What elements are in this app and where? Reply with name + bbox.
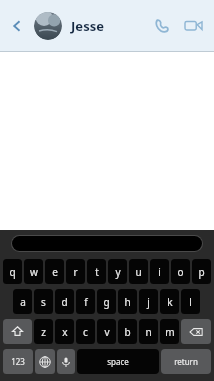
staticText: u bbox=[135, 265, 142, 279]
button[interactable]: Backspace bbox=[181, 319, 211, 344]
staticText: h bbox=[124, 295, 131, 309]
staticText: s bbox=[41, 295, 46, 309]
button[interactable]: a bbox=[13, 289, 32, 314]
staticText: space bbox=[107, 356, 129, 367]
staticText: x bbox=[62, 325, 68, 339]
staticText: m bbox=[165, 325, 175, 339]
button[interactable]: y bbox=[108, 259, 127, 284]
button[interactable]: o bbox=[171, 259, 190, 284]
staticText: a bbox=[20, 295, 26, 309]
button[interactable]: j bbox=[139, 289, 158, 314]
staticText: e bbox=[52, 265, 58, 279]
staticText: y bbox=[115, 265, 121, 279]
button[interactable]: Back bbox=[0, 0, 34, 51]
staticText: o bbox=[177, 265, 184, 279]
staticText: w bbox=[30, 265, 38, 279]
button[interactable]: z bbox=[34, 319, 53, 344]
staticText: i bbox=[158, 265, 161, 279]
staticText: b bbox=[124, 325, 131, 339]
button[interactable]: b bbox=[118, 319, 137, 344]
staticText: l bbox=[189, 295, 192, 309]
button[interactable]: Dictate bbox=[57, 349, 75, 374]
button[interactable]: Shift bbox=[3, 319, 32, 344]
button[interactable]: w bbox=[24, 259, 43, 284]
staticText: t bbox=[95, 265, 99, 279]
button[interactable]: q bbox=[3, 259, 22, 284]
button[interactable]: space bbox=[77, 349, 159, 374]
staticText: j bbox=[147, 295, 150, 309]
button[interactable]: return bbox=[161, 349, 211, 374]
staticText: p bbox=[198, 265, 205, 279]
button[interactable]: m bbox=[160, 319, 179, 344]
button[interactable]: Video call bbox=[176, 0, 210, 51]
staticText: r bbox=[73, 265, 78, 279]
button[interactable]: d bbox=[55, 289, 74, 314]
staticText: c bbox=[83, 325, 88, 339]
button[interactable]: Audio call bbox=[146, 0, 176, 51]
button[interactable]: s bbox=[34, 289, 53, 314]
staticText: v bbox=[104, 325, 110, 339]
button[interactable]: v bbox=[97, 319, 116, 344]
button[interactable]: f bbox=[76, 289, 95, 314]
button[interactable]: r bbox=[66, 259, 85, 284]
staticText: Jesse bbox=[71, 17, 104, 35]
button[interactable]: c bbox=[76, 319, 95, 344]
staticText: g bbox=[103, 295, 110, 309]
button[interactable]: i bbox=[150, 259, 169, 284]
button[interactable]: k bbox=[160, 289, 179, 314]
staticText: f bbox=[84, 295, 88, 309]
button[interactable]: u bbox=[129, 259, 148, 284]
staticText: 123 bbox=[11, 356, 25, 367]
button[interactable]: Message input bbox=[12, 236, 202, 251]
button[interactable]: Jesse profile photo bbox=[34, 12, 62, 40]
staticText: k bbox=[167, 295, 173, 309]
staticText: return bbox=[174, 356, 198, 367]
button[interactable]: p bbox=[192, 259, 211, 284]
button[interactable]: 123 bbox=[3, 349, 33, 374]
button[interactable]: l bbox=[181, 289, 200, 314]
button[interactable]: e bbox=[45, 259, 64, 284]
button[interactable]: x bbox=[55, 319, 74, 344]
button[interactable]: g bbox=[97, 289, 116, 314]
staticText: q bbox=[9, 265, 16, 279]
button[interactable]: t bbox=[87, 259, 106, 284]
staticText: n bbox=[145, 325, 152, 339]
button[interactable]: h bbox=[118, 289, 137, 314]
button[interactable]: n bbox=[139, 319, 158, 344]
button[interactable]: Switch keyboard bbox=[35, 349, 55, 374]
staticText: z bbox=[41, 325, 46, 339]
staticText: d bbox=[61, 295, 68, 309]
